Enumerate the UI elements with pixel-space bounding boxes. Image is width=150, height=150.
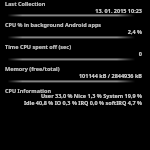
button[interactable]: Time CPU spent off (sec)	[0, 39, 150, 61]
staticText: 0	[5, 50, 142, 57]
staticText: 2,4 %	[5, 28, 142, 35]
staticText: CPU % in background Android apps	[5, 21, 102, 28]
button[interactable]: Memory (free/total)	[0, 61, 150, 83]
button[interactable]: CPU Information	[0, 83, 150, 108]
staticText: 101144 kB / 2844936 kB	[5, 72, 142, 79]
button[interactable]: Last Collection	[0, 0, 150, 17]
staticText: User 33,0 % Nice 1,3 % System 19,9 % Idl…	[5, 92, 142, 106]
staticText: Last Collection	[5, 0, 46, 7]
staticText: CPU Information	[5, 87, 51, 94]
button[interactable]: CPU % in background Android apps	[0, 17, 150, 39]
staticText: Memory (free/total)	[5, 65, 60, 72]
staticText: 13. 01. 2015 10:23	[5, 7, 142, 14]
staticText: Time CPU spent off (sec)	[5, 43, 72, 50]
